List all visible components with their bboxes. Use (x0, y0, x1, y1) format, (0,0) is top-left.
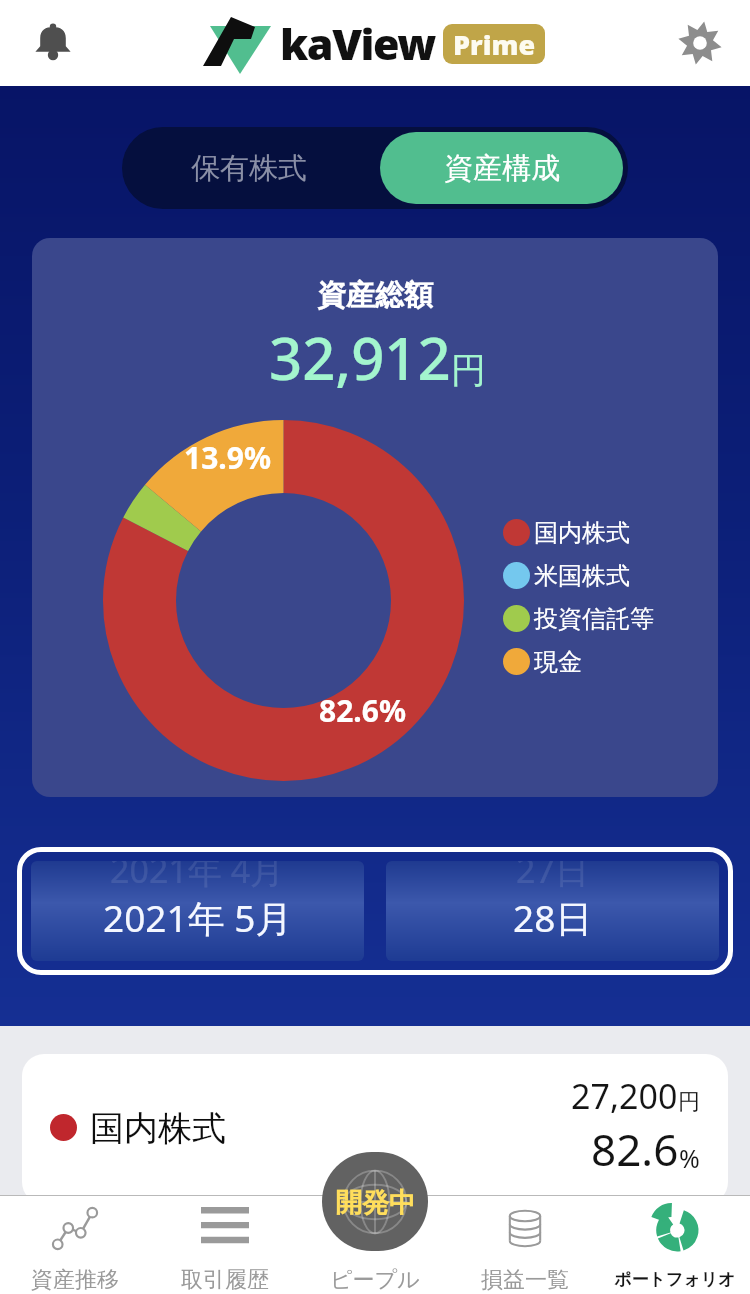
button[interactable]: Notifications (25, 15, 81, 71)
staticText: 国内株式 (90, 1107, 226, 1150)
staticText: 現金 (534, 647, 582, 677)
staticText: 資産推移 (31, 1266, 119, 1294)
staticText: 82.6 (591, 1119, 679, 1179)
staticText: 13.9% (184, 437, 271, 478)
staticText: 国内株式 (534, 518, 630, 548)
button[interactable]: 保有株式 (122, 127, 375, 209)
staticText: % (679, 1141, 700, 1175)
button[interactable]: 資産構成 (380, 132, 623, 204)
button[interactable]: ピープル (300, 1195, 450, 1294)
button[interactable]: 取引履歴 (150, 1195, 300, 1294)
staticText: 32,912 (269, 318, 451, 397)
staticText: 資産総額 (317, 277, 433, 314)
button[interactable]: 国内株式 (22, 1054, 728, 1204)
staticText: ピープル (330, 1266, 420, 1294)
staticText: 保有株式 (191, 150, 307, 187)
staticText: 27日 (516, 861, 589, 893)
staticText: kaView (280, 14, 435, 73)
staticText: 2021年 5月 (103, 892, 293, 943)
staticText: 82.6% (319, 690, 406, 731)
button[interactable]: People (under development) (322, 1152, 428, 1251)
staticText: 円 (451, 348, 486, 392)
button[interactable]: ポートフォリオ (600, 1195, 750, 1294)
staticText: 開発中 (335, 1186, 416, 1220)
staticText: ポートフォリオ (614, 1269, 736, 1290)
staticText: 2021年 4月 (110, 861, 285, 893)
staticText: 米国株式 (534, 561, 630, 591)
staticText: 27,200 (571, 1073, 678, 1119)
staticText: 資産構成 (444, 150, 560, 187)
staticText: 損益一覧 (481, 1266, 569, 1294)
staticText: 28日 (513, 892, 593, 943)
button[interactable]: Settings (672, 15, 728, 71)
button[interactable]: 損益一覧 (450, 1195, 600, 1294)
button[interactable]: 資産推移 (0, 1195, 150, 1294)
button[interactable]: 2021年 4月 (31, 861, 364, 961)
staticText: Prime (453, 26, 536, 63)
staticText: 円 (678, 1088, 700, 1116)
button[interactable]: 27日 (386, 861, 719, 961)
staticText: 取引履歴 (181, 1266, 269, 1294)
staticText: 投資信託等 (534, 604, 654, 634)
